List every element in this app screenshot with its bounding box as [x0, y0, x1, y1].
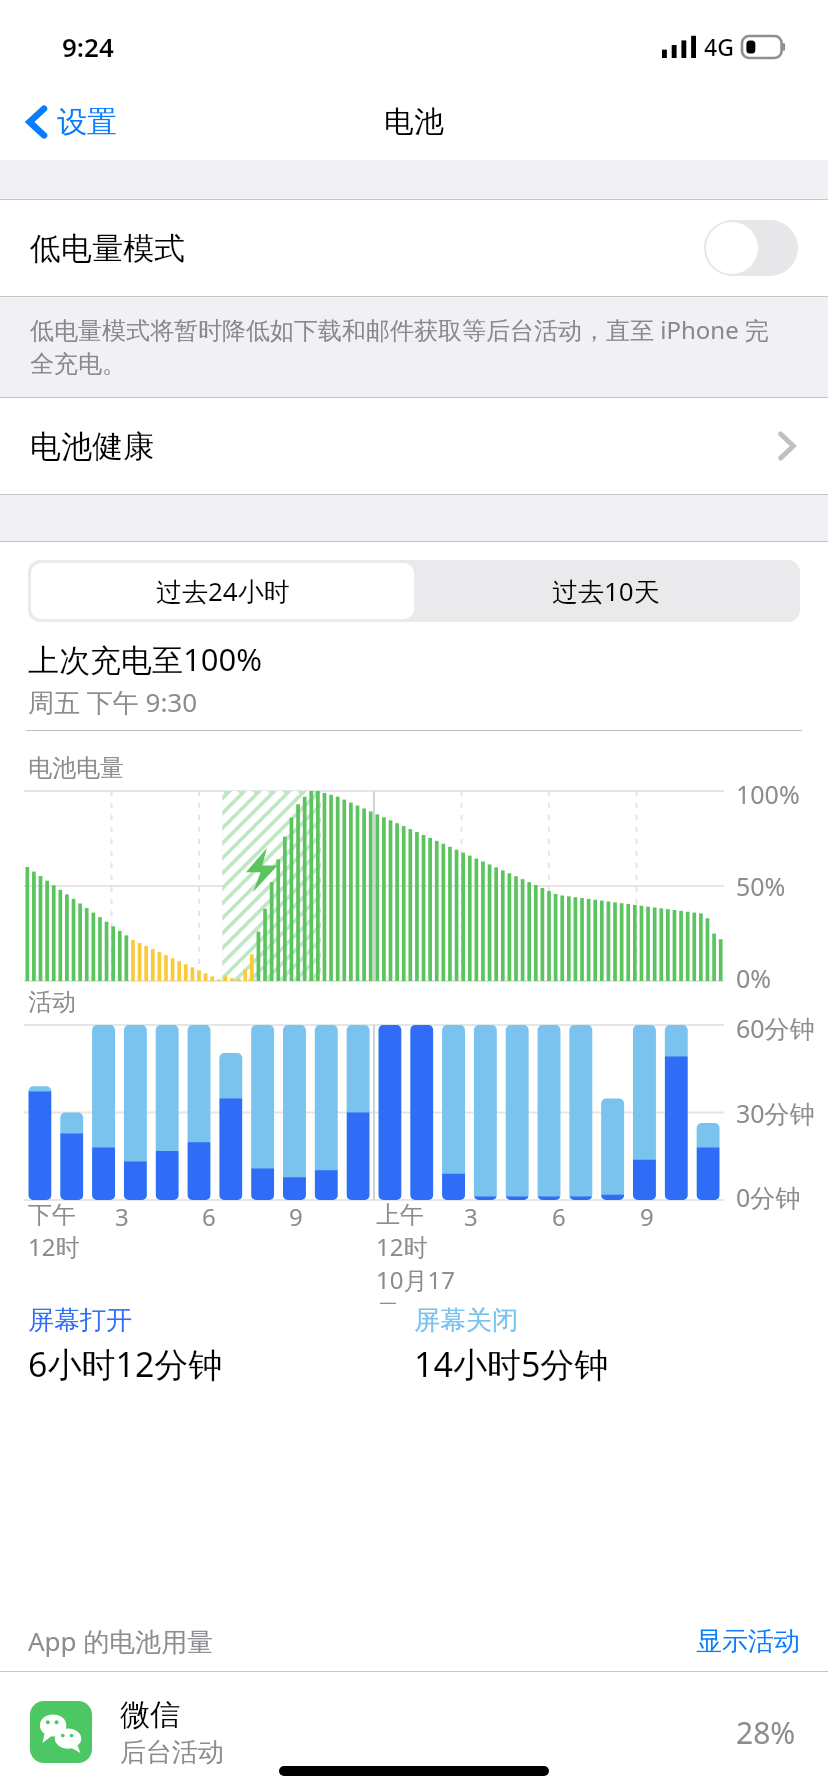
staticText: 上午 [376, 1200, 424, 1230]
staticText: 上次充电至100% [28, 638, 262, 680]
button[interactable]: 设置 [20, 95, 123, 149]
staticText: 0% [736, 961, 772, 995]
staticText: 3 [464, 1200, 478, 1233]
staticText: 屏幕打开 [28, 1304, 132, 1337]
staticText: 9 [289, 1200, 303, 1233]
staticText: 9:24 [62, 29, 114, 64]
staticText: 低电量模式将暂时降低如下载和邮件获取等后台活动，直至 iPhone 完全充电。 [30, 313, 788, 379]
staticText: 12时 [28, 1230, 80, 1263]
button[interactable]: 电池健康 [0, 398, 828, 494]
staticText: 过去24小时 [156, 573, 290, 609]
staticText: 50% [736, 869, 786, 903]
staticText: 低电量模式 [30, 229, 185, 268]
staticText: 显示活动 [696, 1625, 800, 1658]
staticText: 设置 [57, 103, 117, 141]
staticText: 电池 [384, 103, 444, 141]
staticText: 0分钟 [736, 1180, 801, 1214]
staticText: 6 [552, 1200, 566, 1233]
staticText: 6小时12分钟 [28, 1341, 223, 1387]
staticText: 电池健康 [30, 427, 154, 466]
button[interactable]: 低电量模式 [0, 200, 828, 296]
button[interactable]: 显示活动 [696, 1625, 800, 1658]
staticText: 100% [736, 777, 800, 811]
staticText: 周五 下午 9:30 [28, 684, 198, 720]
staticText: 14小时5分钟 [414, 1341, 609, 1387]
staticText: 微信 [120, 1696, 180, 1734]
staticText: 30分钟 [736, 1096, 815, 1130]
staticText: 过去10天 [552, 573, 660, 609]
staticText: App 的电池用量 [28, 1623, 214, 1659]
staticText: 6 [202, 1200, 216, 1233]
staticText: 下午 [28, 1200, 76, 1230]
staticText: 电池电量 [28, 753, 124, 783]
staticText: 后台活动 [120, 1736, 224, 1769]
staticText: 12时 [376, 1230, 428, 1263]
staticText: 28% [736, 1712, 796, 1753]
button[interactable]: Low Power Mode toggle [704, 220, 798, 276]
button[interactable]: 过去10天 [414, 563, 797, 619]
button[interactable]: 微信 [0, 1672, 828, 1792]
staticText: 3 [115, 1200, 129, 1233]
button[interactable]: 过去24小时 [31, 563, 414, 619]
staticText: 10月17日 [376, 1263, 460, 1304]
staticText: 60分钟 [736, 1011, 815, 1045]
staticText: 活动 [28, 987, 76, 1017]
staticText: 4G [704, 31, 734, 62]
staticText: 9 [640, 1200, 654, 1233]
staticText: 屏幕关闭 [414, 1304, 518, 1337]
